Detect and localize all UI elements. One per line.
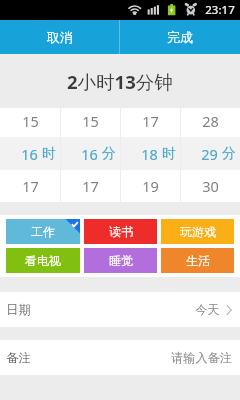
button[interactable]: 工作 [6, 219, 80, 244]
button[interactable]: 15 [0, 108, 60, 202]
staticText: 今天 [195, 302, 220, 317]
staticText: 28 [202, 111, 219, 131]
staticText: 16 [81, 144, 98, 164]
staticText: 17 [142, 111, 159, 131]
staticText: 时 [42, 145, 56, 163]
button[interactable]: 17 [121, 108, 180, 202]
staticText: 完成 [167, 29, 193, 45]
button[interactable]: 备注 [0, 340, 240, 375]
staticText: 取消 [47, 29, 73, 45]
staticText: 2小时13分钟 [67, 69, 173, 94]
staticText: 16 [21, 144, 38, 164]
staticText: 备注 [6, 350, 31, 365]
button[interactable]: 28 [181, 108, 240, 202]
staticText: 18 [141, 144, 158, 164]
staticText: 日期 [6, 302, 31, 317]
button[interactable]: 完成 [120, 20, 240, 54]
button[interactable]: 生活 [161, 248, 234, 273]
button[interactable]: 睡觉 [84, 248, 157, 273]
button[interactable]: 看电视 [6, 248, 80, 273]
staticText: 睡觉 [109, 253, 133, 268]
button[interactable]: 玩游戏 [161, 219, 234, 244]
staticText: 19 [142, 176, 159, 196]
staticText: 15 [22, 111, 39, 131]
staticText: 30 [202, 176, 219, 196]
staticText: 看电视 [25, 253, 61, 268]
staticText: 17 [22, 176, 39, 196]
staticText: 29 [201, 144, 218, 164]
staticText: 读书 [109, 224, 133, 239]
staticText: 请输入备注 [171, 350, 232, 365]
staticText: 工作 [31, 224, 55, 239]
staticText: 分 [222, 145, 236, 163]
staticText: 23:17 [205, 2, 235, 18]
staticText: 生活 [186, 253, 210, 268]
button[interactable]: 读书 [84, 219, 157, 244]
staticText: 17 [82, 176, 99, 196]
button[interactable]: 取消 [0, 20, 119, 54]
button[interactable]: 日期 [0, 292, 240, 327]
staticText: 玩游戏 [180, 224, 216, 239]
staticText: 分 [102, 145, 116, 163]
button[interactable]: 15 [61, 108, 120, 202]
staticText: 15 [82, 111, 99, 131]
staticText: 时 [162, 145, 176, 163]
